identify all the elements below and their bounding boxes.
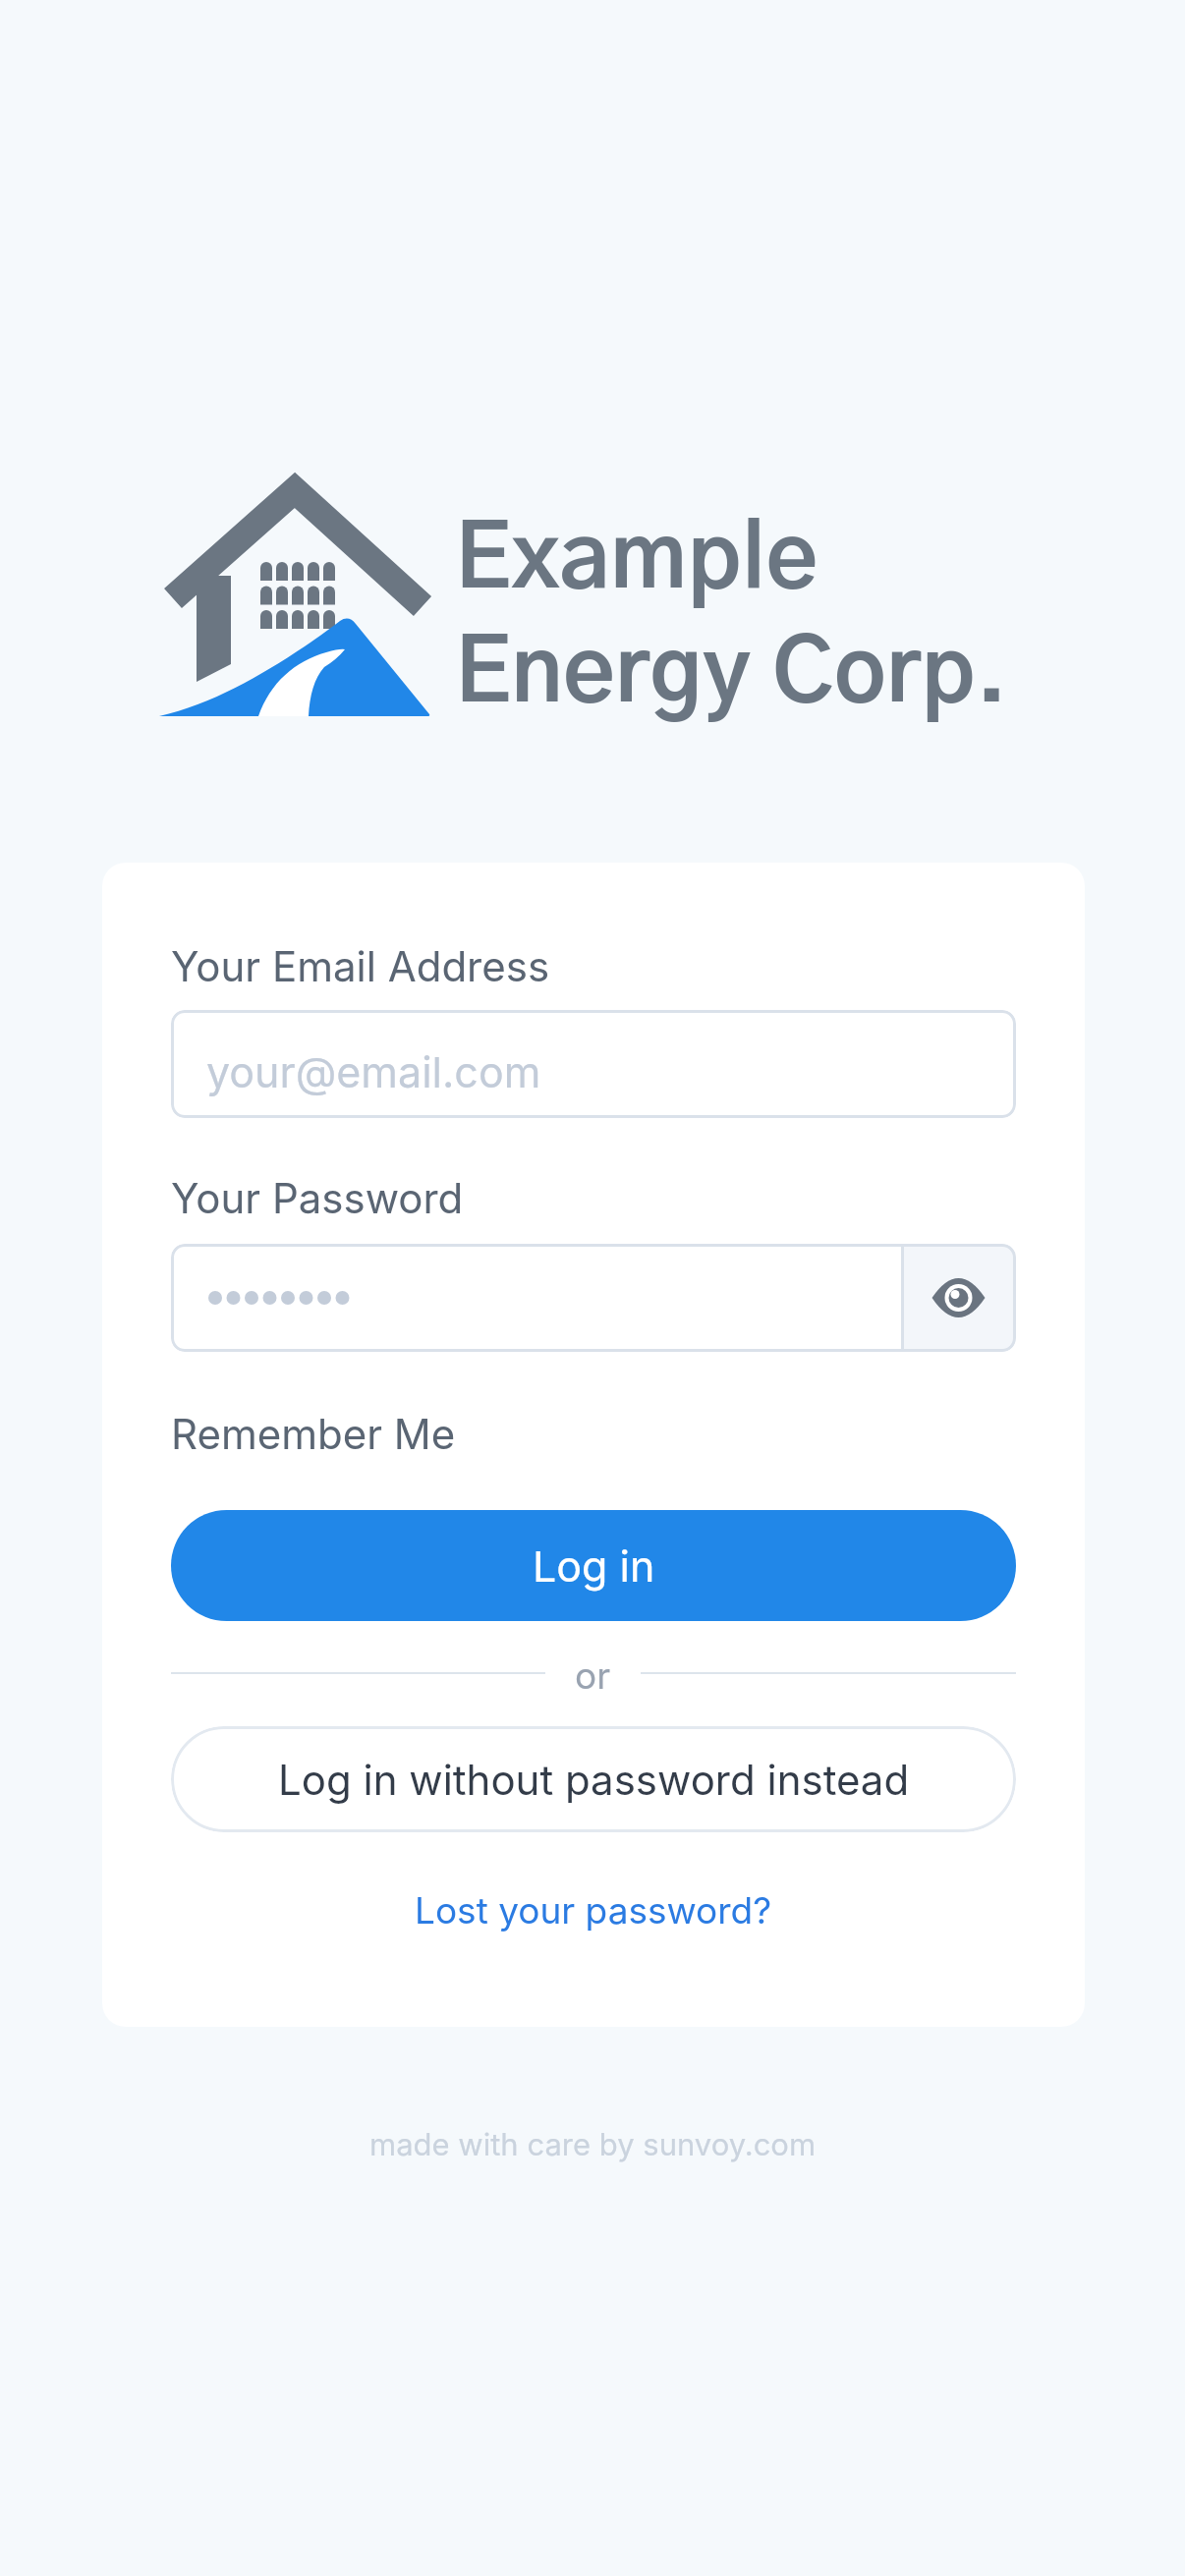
staticText: Example Energy Corp. bbox=[455, 517, 1008, 720]
staticText: Remember Me bbox=[171, 1409, 456, 1459]
staticText: Your Email Address bbox=[171, 941, 550, 991]
staticText: Your Password bbox=[171, 1173, 464, 1223]
button[interactable]: Log in bbox=[171, 1510, 1016, 1621]
staticText: Log in without password instead bbox=[278, 1755, 910, 1805]
staticText: Lost your password? bbox=[415, 1888, 772, 1932]
button[interactable]: your@email.com bbox=[171, 1010, 1016, 1118]
staticText: or bbox=[575, 1653, 611, 1693]
button[interactable]: Lost your password? bbox=[102, 1888, 1085, 1932]
staticText: Log in bbox=[533, 1540, 655, 1592]
staticText: made with care by sunvoy.com bbox=[369, 2126, 817, 2163]
button[interactable] bbox=[171, 1244, 1016, 1352]
staticText: your@email.com bbox=[206, 1046, 541, 1097]
button[interactable]: Log in without password instead bbox=[171, 1726, 1016, 1832]
